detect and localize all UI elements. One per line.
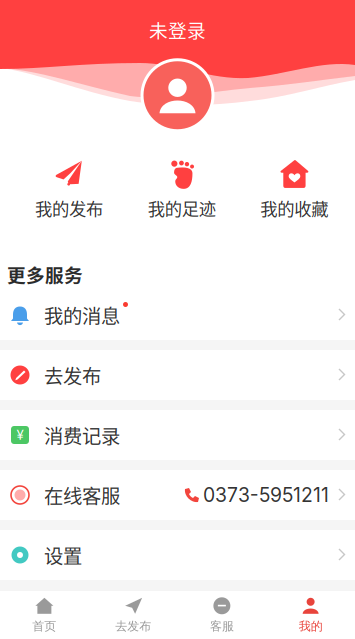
button[interactable]: 首页	[0, 596, 89, 634]
button[interactable]: 在线客服	[0, 470, 355, 520]
staticText: 首页	[32, 619, 56, 634]
staticText: 未登录	[149, 16, 206, 43]
button[interactable]: 去发布	[89, 596, 178, 634]
button[interactable]: 我的足迹	[125, 157, 238, 221]
staticText: 去发布	[44, 361, 101, 389]
button[interactable]: 客服	[177, 596, 266, 634]
button[interactable]: 我的	[266, 596, 355, 634]
staticText: ¥	[16, 427, 23, 443]
staticText: 消费记录	[44, 421, 120, 449]
button[interactable]: 我的发布	[13, 157, 125, 221]
staticText: 在线客服	[44, 481, 120, 509]
staticText: 我的发布	[35, 195, 103, 221]
staticText: 去发布	[115, 619, 151, 634]
staticText: 我的足迹	[148, 195, 216, 221]
button[interactable]: 我的消息	[0, 290, 355, 340]
button[interactable]: 我的收藏	[238, 157, 351, 221]
staticText: 我的消息	[44, 301, 120, 329]
staticText: 我的收藏	[260, 195, 328, 221]
staticText: 0373-5951211	[203, 483, 329, 507]
staticText: 我的	[299, 619, 323, 634]
button[interactable]: 去发布	[0, 350, 355, 400]
staticText: 更多服务	[7, 260, 83, 287]
button[interactable]: ¥	[0, 410, 355, 460]
staticText: 设置	[44, 541, 82, 569]
staticText: 客服	[210, 619, 234, 634]
button[interactable]: 设置	[0, 530, 355, 580]
